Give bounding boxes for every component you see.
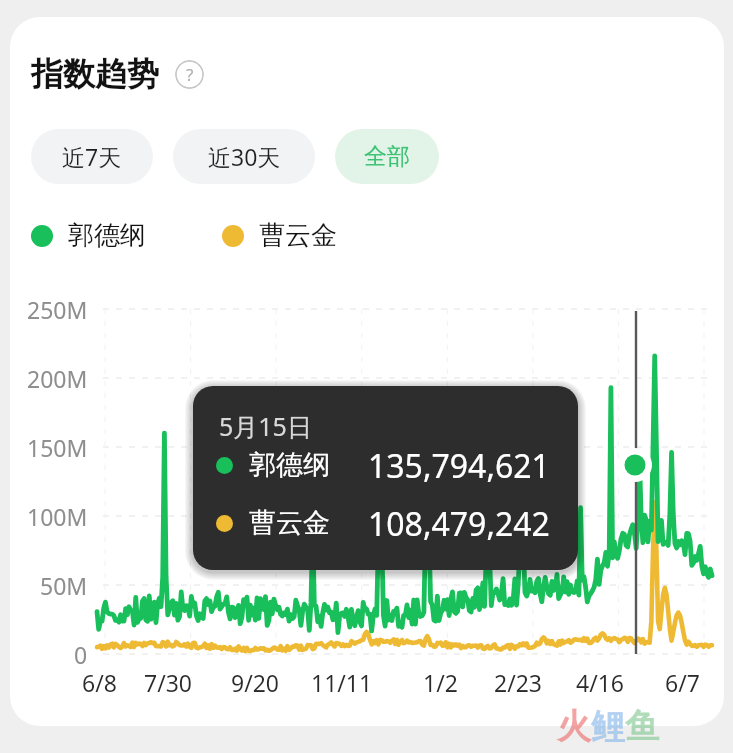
staticText: 2/23 [494, 667, 543, 698]
staticText: 6/8 [82, 667, 117, 698]
staticText: 近30天 [208, 141, 281, 172]
staticText: 鱼 [625, 705, 659, 748]
staticText: 曹云金 [259, 219, 337, 252]
staticText: ? [186, 63, 194, 86]
button[interactable]: 曹云金 [222, 219, 337, 252]
staticText: 6/7 [665, 667, 700, 698]
staticText: 郭德纲 [249, 448, 330, 482]
staticText: 135,794,621 [368, 444, 550, 486]
button[interactable]: Help [175, 60, 204, 89]
staticText: 250M [27, 294, 88, 325]
staticText: 近7天 [62, 141, 122, 172]
staticText: 火 [557, 705, 591, 748]
staticText: 108,479,242 [368, 502, 550, 544]
staticText: 200M [27, 363, 88, 394]
staticText: 0 [74, 639, 88, 670]
staticText: 5月15日 [219, 409, 312, 443]
staticText: 鲤 [591, 705, 625, 748]
staticText: 150M [27, 432, 88, 463]
staticText: 全部 [364, 142, 410, 171]
button[interactable]: 郭德纲 [31, 219, 146, 252]
button[interactable]: 全部 [335, 129, 439, 184]
staticText: 曹云金 [249, 506, 330, 540]
staticText: 1/2 [423, 667, 458, 698]
staticText: 50M [40, 570, 88, 601]
staticText: 9/20 [231, 667, 280, 698]
staticText: 郭德纲 [68, 219, 146, 252]
staticText: 7/30 [144, 667, 193, 698]
staticText: 100M [27, 501, 88, 532]
staticText: 11/11 [311, 667, 373, 698]
staticText: 指数趋势 [31, 54, 159, 94]
staticText: 4/16 [576, 667, 625, 698]
button[interactable]: 近30天 [173, 129, 315, 184]
button[interactable]: 近7天 [31, 129, 153, 184]
